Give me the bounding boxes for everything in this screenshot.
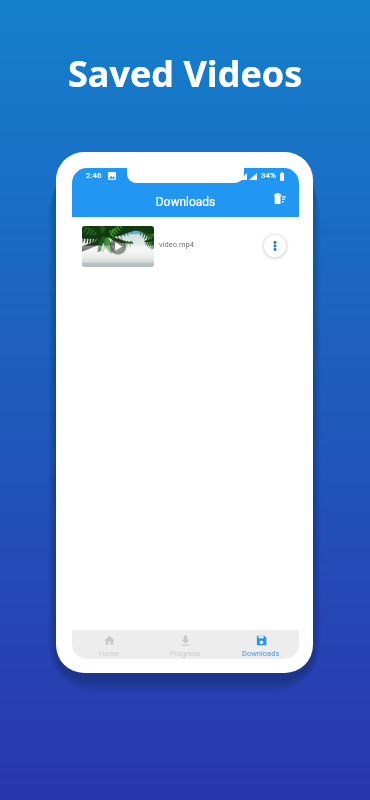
staticText: Progress — [170, 649, 200, 658]
button[interactable]: Delete all downloads — [269, 187, 291, 209]
button[interactable]: Home — [72, 630, 147, 659]
staticText: video.mp4 — [159, 240, 194, 249]
button[interactable]: Downloads — [223, 630, 299, 659]
staticText: Downloads — [72, 195, 299, 209]
button[interactable]: Progress — [147, 630, 223, 659]
staticText: Downloads — [242, 649, 280, 658]
staticText: 2:46 — [86, 171, 102, 180]
staticText: Home — [99, 649, 120, 658]
staticText: Saved Videos — [0, 49, 370, 98]
button[interactable]: video.mp4 — [72, 217, 299, 265]
staticText: 34% — [261, 171, 276, 180]
button[interactable]: More options — [264, 235, 286, 257]
